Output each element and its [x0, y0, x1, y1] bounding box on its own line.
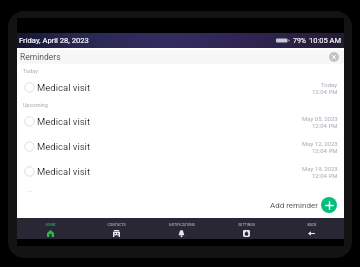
- button[interactable]: HOME: [17, 218, 83, 239]
- button[interactable]: Add reminder: [270, 197, 337, 213]
- staticText: May 12, 2023: [302, 140, 338, 147]
- staticText: 12:04 PM: [312, 122, 338, 129]
- staticText: 12:04 PM: [312, 147, 338, 154]
- staticText: Medical visit: [37, 82, 91, 93]
- staticText: 79%: [293, 37, 306, 45]
- staticText: 12:04 PM: [312, 172, 338, 179]
- staticText: Today: [321, 81, 338, 88]
- button[interactable]: BACK: [279, 218, 344, 239]
- staticText: CONTACTS: [107, 223, 126, 227]
- staticText: 12:04 PM: [312, 88, 338, 95]
- staticText: Add reminder: [270, 201, 318, 210]
- staticText: Medical visit: [37, 116, 91, 127]
- staticText: SETTINGS: [238, 223, 255, 227]
- staticText: 12:04 PM: [312, 197, 338, 204]
- button[interactable]: Medical visit: [17, 184, 344, 209]
- staticText: HOME: [45, 223, 56, 227]
- staticText: Upcoming: [23, 102, 48, 108]
- staticText: Today: [23, 68, 38, 74]
- button[interactable]: CONTACTS: [83, 218, 149, 239]
- staticText: May 05, 2023: [302, 115, 338, 122]
- button[interactable]: Medical visit: [17, 134, 344, 159]
- staticText: May 19, 2023: [302, 165, 338, 172]
- staticText: Friday, April 28, 2023: [19, 36, 89, 45]
- staticText: 10:05 AM: [309, 36, 341, 45]
- staticText: BACK: [307, 223, 317, 227]
- button[interactable]: SETTINGS: [214, 218, 279, 239]
- staticText: Medical visit: [37, 166, 91, 177]
- staticText: Reminders: [20, 52, 61, 62]
- button[interactable]: Medical visit: [17, 109, 344, 134]
- button[interactable]: Medical visit: [17, 75, 344, 100]
- button[interactable]: Close: [329, 52, 339, 62]
- button[interactable]: NOTIFICATIONS: [149, 218, 214, 239]
- staticText: Medical visit: [37, 141, 91, 152]
- staticText: NOTIFICATIONS: [169, 223, 195, 227]
- button[interactable]: Medical visit: [17, 159, 344, 184]
